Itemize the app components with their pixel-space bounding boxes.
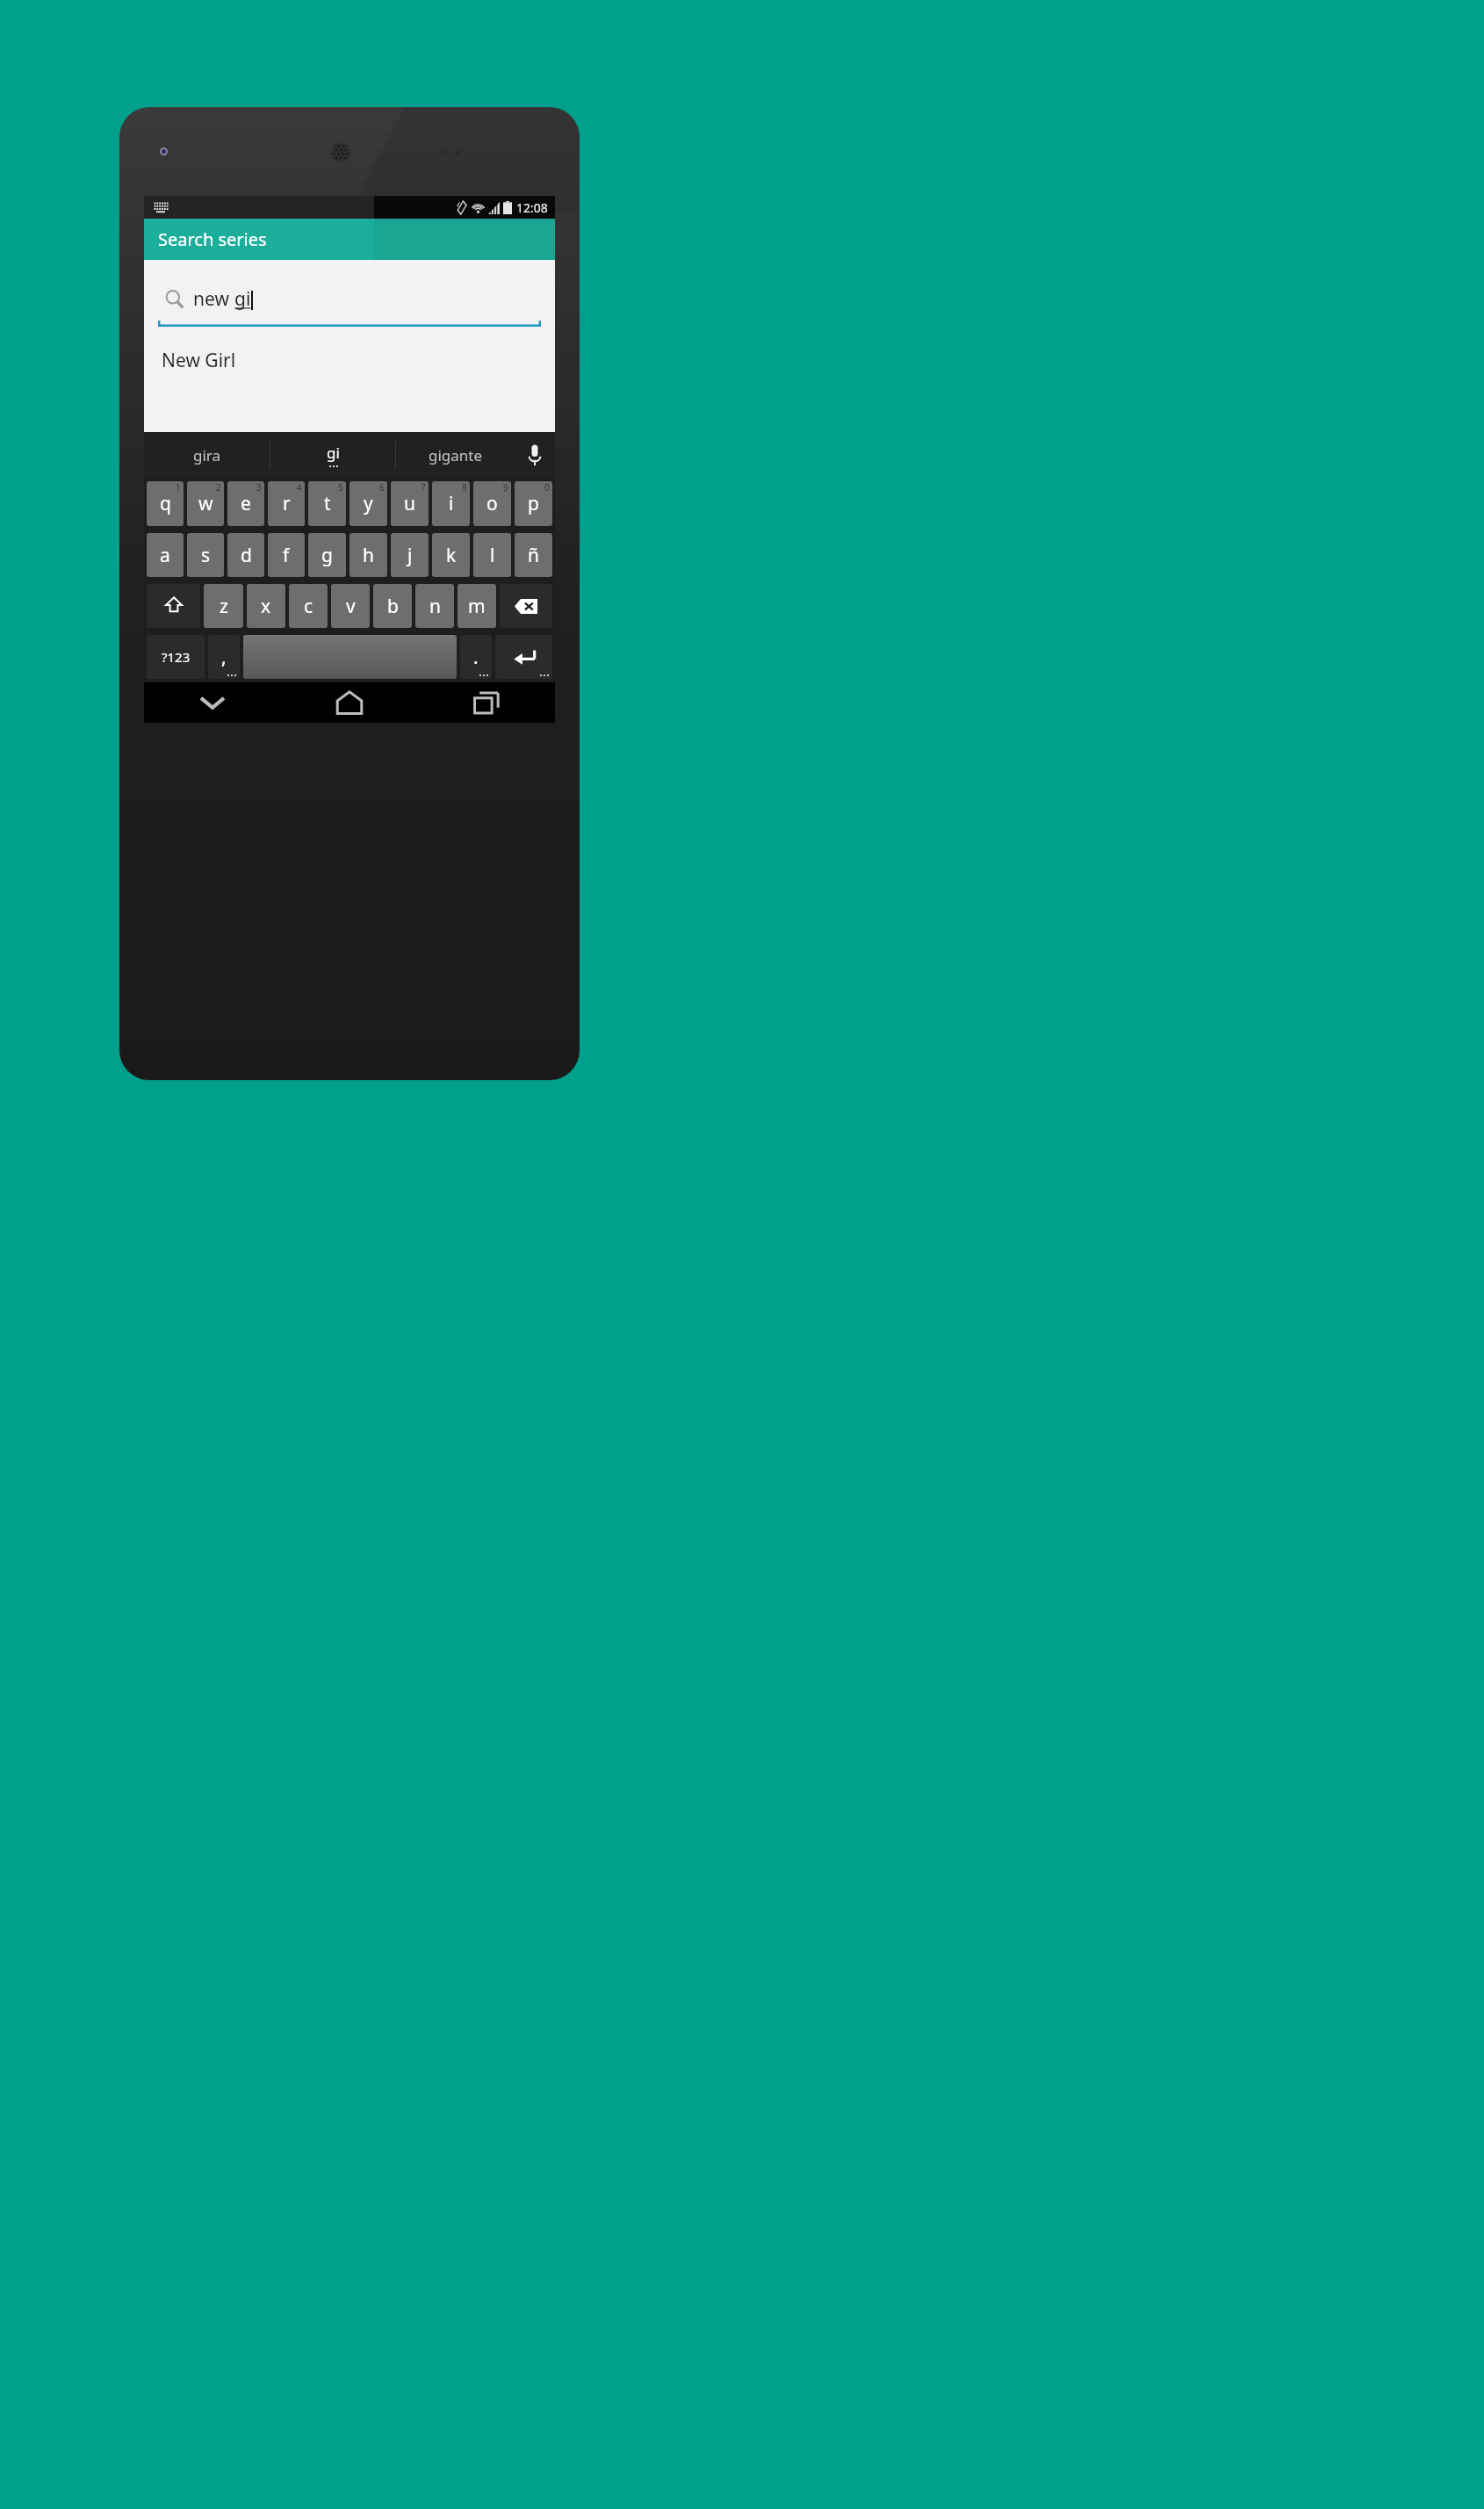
staticText: o — [486, 491, 498, 516]
button[interactable]: ?123 — [147, 635, 205, 679]
staticText: y — [364, 491, 373, 516]
button[interactable]: Recent apps — [418, 682, 555, 723]
button[interactable]: c — [289, 584, 328, 628]
button[interactable]: j — [391, 533, 429, 577]
staticText: 3 — [256, 481, 262, 494]
staticText: Search series — [158, 227, 267, 251]
button[interactable]: b — [373, 584, 412, 628]
staticText: l — [490, 543, 495, 568]
staticText: a — [160, 543, 170, 568]
staticText: e — [241, 491, 251, 516]
staticText: New Girl — [162, 348, 236, 373]
staticText: 0 — [544, 481, 550, 494]
staticText: c — [304, 594, 313, 619]
staticText: v — [346, 594, 356, 619]
button[interactable]: g — [308, 533, 346, 577]
staticText: gira — [193, 445, 221, 465]
staticText: u — [404, 491, 415, 516]
staticText: 5 — [338, 481, 343, 494]
button[interactable]: Voice input — [515, 432, 555, 478]
staticText: 4 — [297, 481, 302, 494]
button[interactable]: h — [349, 533, 387, 577]
button[interactable]: New Girl — [144, 341, 555, 379]
staticText: new — [193, 286, 234, 312]
button[interactable]: gigante — [396, 432, 515, 478]
button[interactable]: x — [247, 584, 285, 628]
button[interactable]: shift — [147, 584, 200, 628]
button[interactable]: o — [473, 481, 511, 526]
button[interactable]: enter — [495, 635, 552, 679]
button[interactable]: gira — [144, 432, 270, 478]
button[interactable]: gi — [270, 432, 395, 478]
staticText: . — [473, 645, 479, 670]
staticText: x — [261, 594, 271, 619]
staticText: 12:08 — [516, 199, 548, 216]
staticText: h — [363, 543, 374, 568]
staticText: 2 — [216, 481, 221, 494]
button[interactable]: i — [432, 481, 470, 526]
button[interactable]: r — [268, 481, 305, 526]
staticText: p — [528, 491, 539, 516]
staticText: q — [160, 491, 171, 516]
button[interactable]: new — [158, 286, 541, 312]
staticText: 1 — [176, 481, 181, 494]
button[interactable]: Home — [281, 682, 418, 723]
staticText: j — [407, 543, 413, 568]
button[interactable]: w — [187, 481, 224, 526]
button[interactable]: m — [457, 584, 496, 628]
staticText: 9 — [503, 481, 508, 494]
staticText: k — [446, 543, 457, 568]
button[interactable]: e — [227, 481, 264, 526]
staticText: s — [201, 543, 211, 568]
staticText: w — [198, 491, 213, 516]
staticText: gigante — [429, 445, 483, 465]
staticText: , — [221, 645, 227, 670]
button[interactable]: k — [432, 533, 470, 577]
staticText: b — [387, 594, 399, 619]
button[interactable]: d — [227, 533, 264, 577]
staticText: 6 — [379, 481, 385, 494]
staticText: t — [324, 491, 331, 516]
staticText: i — [449, 491, 454, 516]
button[interactable]: del — [500, 584, 552, 628]
staticText: m — [468, 594, 486, 619]
button[interactable]: v — [331, 584, 370, 628]
button[interactable]: t — [308, 481, 346, 526]
staticText: d — [241, 543, 252, 568]
staticText: 8 — [462, 481, 467, 494]
staticText: z — [220, 594, 228, 619]
button[interactable]: a — [147, 533, 184, 577]
button[interactable]: q — [147, 481, 184, 526]
button[interactable]: . — [460, 635, 492, 679]
button[interactable]: u — [391, 481, 429, 526]
button[interactable]: f — [268, 533, 305, 577]
staticText: ?123 — [162, 648, 191, 666]
button[interactable]: ñ — [515, 533, 552, 577]
staticText: 7 — [421, 481, 426, 494]
staticText: n — [429, 594, 441, 619]
staticText: g — [321, 543, 333, 568]
staticText: gi — [327, 443, 340, 463]
button[interactable]: y — [349, 481, 387, 526]
button[interactable]: s — [187, 533, 224, 577]
button[interactable]: Hide keyboard — [144, 682, 281, 723]
staticText: f — [283, 543, 290, 568]
button[interactable]: l — [473, 533, 511, 577]
staticText: ñ — [528, 543, 539, 568]
staticText: gi — [234, 286, 251, 312]
button[interactable]: space — [243, 635, 457, 679]
button[interactable]: , — [208, 635, 240, 679]
button[interactable]: n — [415, 584, 454, 628]
button[interactable]: z — [204, 584, 243, 628]
staticText: r — [283, 491, 291, 516]
button[interactable]: p — [515, 481, 552, 526]
